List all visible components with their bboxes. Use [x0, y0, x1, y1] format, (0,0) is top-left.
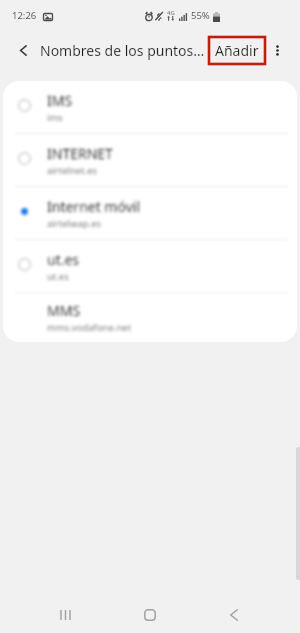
staticText: Internet móvil [47, 197, 140, 216]
button[interactable]: Más opciones [266, 39, 288, 61]
button[interactable]: ut.es [3, 240, 297, 292]
button[interactable]: Añadir [209, 37, 265, 64]
staticText: 4G [167, 9, 175, 17]
staticText: IMS [47, 91, 73, 110]
staticText: INTERNET [47, 144, 113, 163]
staticText: Añadir [215, 41, 259, 60]
button[interactable]: Atrás [12, 39, 34, 61]
staticText: MMS [47, 301, 81, 320]
button[interactable]: Internet móvil [3, 187, 297, 239]
staticText: airtelwap.es [47, 217, 102, 230]
staticText: ims [47, 111, 63, 124]
button[interactable]: Atrás [212, 596, 255, 633]
staticText: 12:26 [12, 9, 37, 22]
button[interactable]: Inicio [128, 596, 171, 633]
button[interactable]: Recientes [44, 596, 87, 633]
staticText: mms.vodafone.net [47, 321, 132, 334]
button[interactable]: INTERNET [3, 134, 297, 186]
staticText: ut.es [47, 250, 80, 269]
staticText: 55% [191, 9, 210, 22]
staticText: Nombres de los puntos… [40, 41, 214, 60]
staticText: ut.es [47, 270, 69, 283]
button[interactable]: IMS [3, 81, 297, 133]
button[interactable]: MMS [3, 293, 297, 342]
staticText: airtelnet.es [47, 164, 98, 177]
